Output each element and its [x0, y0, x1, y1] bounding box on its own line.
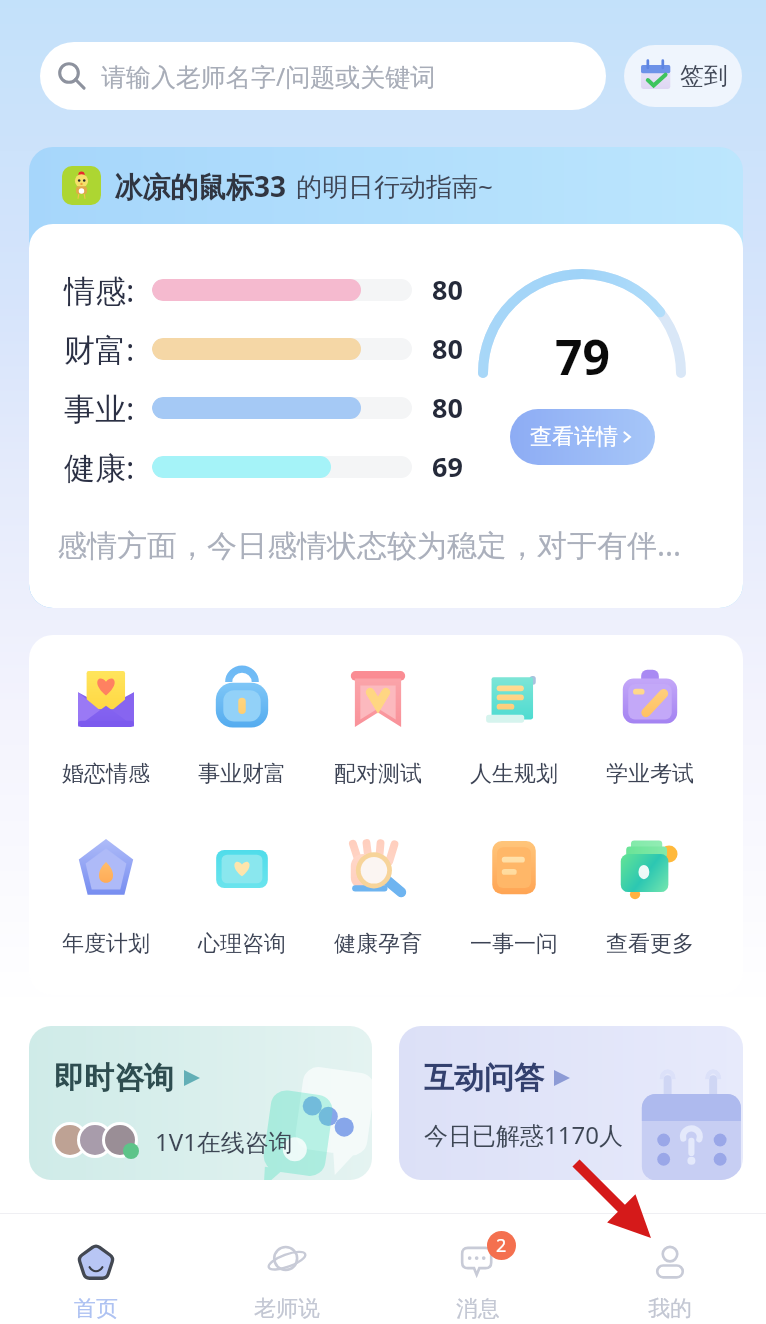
staticText: 查看详情 — [530, 423, 618, 451]
staticText: 健康孕育 — [334, 930, 422, 958]
staticText: 学业考试 — [606, 760, 694, 788]
staticText: 事业财富 — [198, 760, 286, 788]
button[interactable]: 首页 — [0, 1214, 191, 1324]
staticText: 健康: — [64, 446, 152, 488]
button[interactable]: 一事一问 — [446, 835, 582, 958]
button[interactable]: 人生规划 — [446, 665, 582, 788]
staticText: 79 — [555, 324, 610, 389]
staticText: 一事一问 — [470, 930, 558, 958]
button[interactable]: 老师说 — [191, 1214, 382, 1324]
button[interactable]: 请输入老师名字/问题或关键词 — [40, 42, 606, 110]
staticText: 事业: — [64, 387, 152, 429]
staticText: 签到 — [680, 61, 728, 91]
button[interactable]: 2 — [382, 1214, 574, 1324]
staticText: 80 — [432, 330, 463, 367]
staticText: 2 — [496, 1233, 507, 1258]
staticText: 80 — [432, 389, 463, 426]
button[interactable]: 事业财富 — [174, 665, 310, 788]
staticText: 年度计划 — [62, 930, 150, 958]
staticText: 互动问答 — [424, 1059, 544, 1097]
staticText: 69 — [432, 448, 463, 485]
button[interactable]: 查看详情 — [510, 409, 655, 465]
staticText: 老师说 — [254, 1295, 320, 1323]
button[interactable]: 即时咨询 — [29, 1026, 372, 1180]
staticText: 消息 — [456, 1295, 500, 1323]
staticText: 的明日行动指南~ — [296, 168, 493, 204]
staticText: 配对测试 — [334, 760, 422, 788]
button[interactable]: 学业考试 — [582, 665, 718, 788]
staticText: 婚恋情感 — [62, 760, 150, 788]
staticText: 财富: — [64, 328, 152, 370]
staticText: 1V1在线咨询 — [155, 1125, 293, 1158]
staticText: 感情方面，今日感情状态较为稳定，对于有伴... — [57, 524, 682, 565]
button[interactable]: 我的 — [574, 1214, 766, 1324]
button[interactable]: 配对测试 — [310, 665, 446, 788]
staticText: 请输入老师名字/问题或关键词 — [101, 59, 436, 93]
button[interactable]: 互动问答 — [399, 1026, 743, 1180]
staticText: 首页 — [74, 1295, 118, 1323]
staticText: 查看更多 — [606, 930, 694, 958]
button[interactable]: 婚恋情感 — [37, 665, 174, 788]
button[interactable]: 签到 — [624, 45, 742, 107]
staticText: 80 — [432, 271, 463, 308]
staticText: 心理咨询 — [198, 930, 286, 958]
staticText: 人生规划 — [470, 760, 558, 788]
staticText: 我的 — [648, 1295, 692, 1323]
staticText: 即时咨询 — [54, 1059, 174, 1097]
button[interactable]: 心理咨询 — [174, 835, 310, 958]
staticText: 冰凉的鼠标33 — [114, 167, 287, 205]
staticText: 今日已解惑1170人 — [424, 1118, 623, 1151]
button[interactable]: 查看更多 — [582, 835, 718, 958]
button[interactable]: 年度计划 — [37, 835, 174, 958]
staticText: 情感: — [64, 269, 152, 311]
button[interactable]: 健康孕育 — [310, 835, 446, 958]
